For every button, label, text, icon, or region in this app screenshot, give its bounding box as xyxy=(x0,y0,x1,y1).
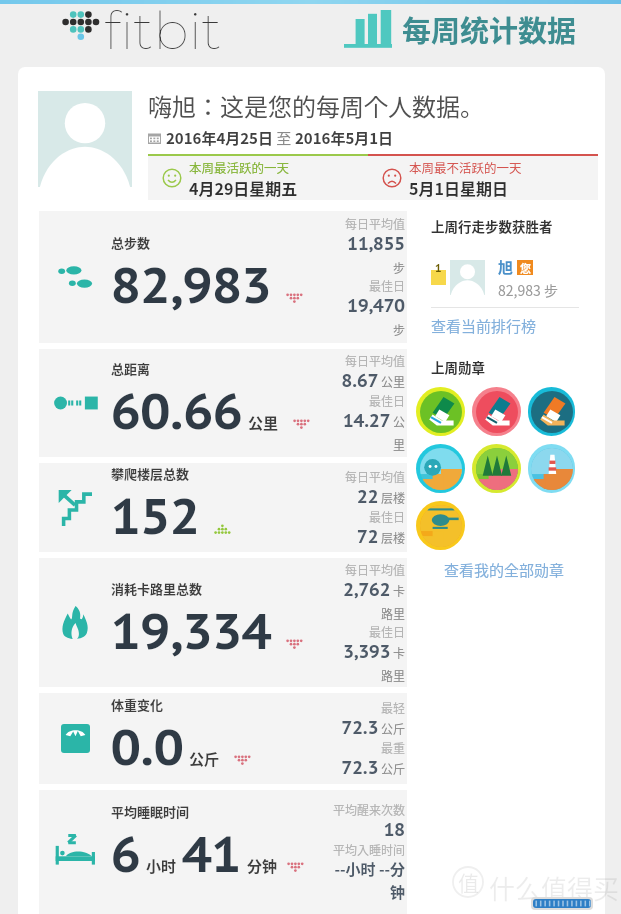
staticText: 22 层楼 xyxy=(333,485,405,508)
staticText: 41 xyxy=(182,821,242,886)
staticText: 公斤 xyxy=(189,748,220,770)
button[interactable]: Badge xyxy=(472,444,521,493)
button[interactable]: Badge xyxy=(528,444,575,493)
staticText: 最佳日 xyxy=(333,508,405,525)
staticText: 最佳日 xyxy=(333,392,405,409)
staticText: 体重变化 xyxy=(111,695,164,714)
button[interactable]: Badge xyxy=(416,444,465,493)
staticText: 14.27 公里 xyxy=(333,409,405,454)
staticText: --小时 --分钟 xyxy=(331,858,405,903)
staticText: fitbit xyxy=(104,0,222,57)
staticText: 值 xyxy=(458,867,479,897)
staticText: 2016年5月1日 xyxy=(295,127,394,149)
staticText: 152 xyxy=(111,483,200,548)
staticText: 2,762 卡路里 xyxy=(333,578,405,623)
staticText: 您 xyxy=(520,260,531,275)
staticText: 2016年4月25日 xyxy=(166,127,273,149)
staticText: 什么值得买 xyxy=(489,869,621,907)
staticText: 每日平均值 xyxy=(333,561,405,578)
staticText: 每日平均值 xyxy=(333,215,405,232)
staticText: 19,470 步 xyxy=(333,294,405,339)
staticText: 19,334 xyxy=(111,598,272,663)
button[interactable]: Badge xyxy=(528,387,575,436)
staticText: 总距离 xyxy=(111,359,151,378)
button[interactable]: Badge xyxy=(416,387,465,436)
staticText: 每周统计数据 xyxy=(402,8,577,50)
button[interactable]: 1 xyxy=(431,255,558,299)
button[interactable]: 平均睡眠时间 xyxy=(39,790,407,914)
staticText: 18 xyxy=(331,818,405,841)
staticText: 每日平均值 xyxy=(333,352,405,369)
staticText: 本周最不活跃的一天 xyxy=(409,158,522,176)
button[interactable]: Badge xyxy=(416,501,465,550)
staticText: 8.67 公里 xyxy=(333,369,405,392)
staticText: 旭 xyxy=(498,256,514,278)
staticText: 上周勋章 xyxy=(431,357,485,377)
button[interactable]: 攀爬楼层总数 xyxy=(39,463,407,552)
staticText: 最轻 xyxy=(333,699,405,716)
staticText: 上周行走步数获胜者 xyxy=(431,216,553,236)
staticText: 11,855 步 xyxy=(333,232,405,277)
staticText: 4月29日星期五 xyxy=(189,176,298,199)
staticText: 总步数 xyxy=(111,233,151,252)
button[interactable]: 消耗卡路里总数 xyxy=(39,558,407,687)
staticText: 72 层楼 xyxy=(333,525,405,548)
button[interactable]: 本周最不活跃的一天 xyxy=(368,154,598,200)
button[interactable]: 体重变化 xyxy=(39,693,407,784)
staticText: 平均入睡时间 xyxy=(331,841,405,858)
staticText: 公里 xyxy=(248,412,279,434)
staticText: 3,393 卡路里 xyxy=(333,640,405,685)
staticText: 攀爬楼层总数 xyxy=(111,464,190,483)
staticText: 本周最活跃的一天 xyxy=(189,158,290,176)
staticText: 最佳日 xyxy=(333,277,405,294)
staticText: 平均睡眠时间 xyxy=(111,802,190,821)
button[interactable]: 总距离 xyxy=(39,349,407,457)
staticText: 72.3 公斤 xyxy=(333,716,405,739)
button[interactable]: 本周最活跃的一天 xyxy=(148,154,368,200)
staticText: 1 xyxy=(435,261,442,275)
staticText: 平均醒来次数 xyxy=(331,801,405,818)
button[interactable]: Badge xyxy=(472,387,521,436)
staticText: 6 xyxy=(111,821,141,886)
staticText: 60.66 xyxy=(111,378,243,443)
staticText: 0.0 xyxy=(111,714,184,779)
button[interactable]: 查看我的全部勋章 xyxy=(444,559,565,581)
button[interactable]: 查看当前排行榜 xyxy=(431,315,537,337)
staticText: 最重 xyxy=(333,739,405,756)
staticText: 72.3 公斤 xyxy=(333,756,405,779)
staticText: 消耗卡路里总数 xyxy=(111,579,203,598)
staticText: 最佳日 xyxy=(333,623,405,640)
staticText: 分钟 xyxy=(247,855,278,877)
button[interactable]: 总步数 xyxy=(39,211,407,343)
staticText: 5月1日星期日 xyxy=(409,176,508,199)
staticText: 每日平均值 xyxy=(333,468,405,485)
staticText: 82,983 步 xyxy=(498,280,558,300)
staticText: 嗨旭：这是您的每周个人数据。 xyxy=(148,88,484,123)
staticText: 至 xyxy=(273,127,295,149)
staticText: 82,983 xyxy=(111,252,272,317)
staticText: 小时 xyxy=(146,855,177,877)
